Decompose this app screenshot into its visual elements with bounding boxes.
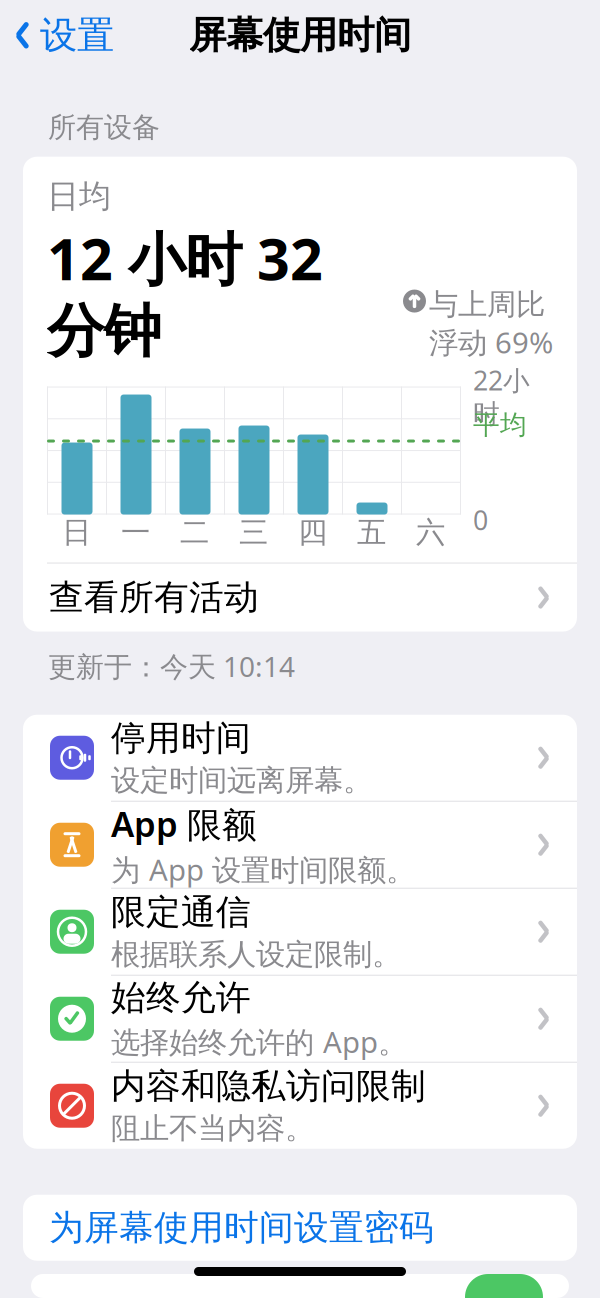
button[interactable]: 设置 (0, 2, 124, 68)
staticText: 停用时间 (111, 717, 251, 759)
staticText: 所有设备 (48, 110, 160, 145)
staticText: 为屏幕使用时间设置密码 (49, 1206, 434, 1249)
staticText: 始终允许 (111, 976, 251, 1019)
staticText: 六 (416, 514, 445, 550)
button[interactable]: 内容和隐私访问限制 (23, 1063, 577, 1149)
staticText: 三 (239, 514, 268, 550)
button[interactable]: 限定通信 (23, 889, 577, 976)
staticText: 阻止不当内容。 (111, 1110, 314, 1146)
staticText: 一 (121, 514, 150, 550)
staticText: 使用密码保障“屏幕使用时间”的设置，并在达到限额时允许更多使用时间。 (48, 1275, 534, 1298)
staticText: 12 小时 32 分钟 (47, 220, 323, 367)
staticText: 设置 (40, 12, 114, 58)
staticText: 平均 (473, 408, 527, 441)
staticText: 限定通信 (111, 891, 251, 933)
staticText: 五 (357, 514, 386, 550)
button[interactable]: 为屏幕使用时间设置密码 (23, 1195, 577, 1261)
staticText: 设定时间远离屏幕。 (111, 762, 372, 798)
staticText: 选择始终允许的 App。 (111, 1022, 407, 1061)
staticText: 查看所有活动 (49, 576, 259, 619)
staticText: 日 (62, 514, 91, 550)
button[interactable]: 停用时间 (23, 715, 577, 802)
staticText: 四 (298, 514, 327, 550)
staticText: 内容和隐私访问限制 (111, 1065, 426, 1107)
button[interactable]: 查看所有活动 (23, 563, 577, 631)
staticText: 更新于：今天 10:14 (48, 647, 295, 685)
staticText: 0 (473, 502, 488, 538)
staticText: 为 App 设置时间限额。 (111, 850, 415, 889)
staticText: 日均 (47, 177, 111, 216)
button[interactable]: 始终允许 (23, 976, 577, 1063)
staticText: 屏幕使用时间 (189, 12, 411, 58)
staticText: App 限额 (111, 801, 257, 847)
staticText: 根据联系人设定限制。 (111, 936, 401, 972)
staticText: 22小时 (473, 362, 530, 431)
button[interactable]: App 限额 (23, 802, 577, 889)
staticText: 与上周比浮动 69% (429, 287, 553, 362)
staticText: 二 (180, 514, 209, 550)
